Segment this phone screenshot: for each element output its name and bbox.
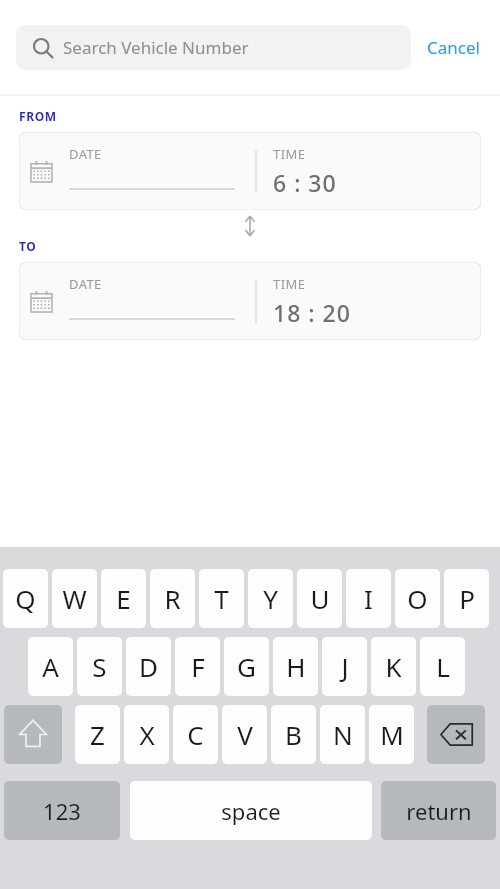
button[interactable]: Cancel bbox=[423, 32, 484, 63]
staticText: TO bbox=[19, 238, 37, 254]
staticText: H bbox=[286, 649, 306, 684]
staticText: TIME bbox=[273, 275, 306, 293]
button[interactable]: Swap from and to bbox=[237, 213, 263, 239]
button[interactable]: R bbox=[150, 569, 195, 628]
staticText: return bbox=[406, 796, 472, 826]
button[interactable]: E bbox=[101, 569, 146, 628]
button[interactable]: W bbox=[52, 569, 97, 628]
staticText: F bbox=[191, 649, 205, 684]
staticText: L bbox=[436, 649, 450, 684]
staticText: O bbox=[407, 581, 428, 616]
staticText: DATE bbox=[69, 275, 102, 293]
staticText: K bbox=[385, 649, 402, 684]
staticText: Search Vehicle Number bbox=[63, 36, 249, 59]
staticText: W bbox=[62, 581, 87, 616]
staticText: space bbox=[221, 796, 281, 826]
button[interactable]: M bbox=[369, 705, 414, 764]
button[interactable]: DATE bbox=[19, 132, 481, 210]
button[interactable]: 123 bbox=[4, 781, 120, 840]
button[interactable]: I bbox=[346, 569, 391, 628]
button[interactable]: T bbox=[199, 569, 244, 628]
button[interactable]: V bbox=[222, 705, 267, 764]
button[interactable]: Shift bbox=[4, 705, 62, 764]
staticText: Cancel bbox=[427, 36, 480, 59]
staticText: S bbox=[92, 649, 107, 684]
staticText: E bbox=[116, 581, 131, 616]
staticText: A bbox=[42, 649, 59, 684]
button[interactable]: U bbox=[297, 569, 342, 628]
staticText: 123 bbox=[43, 796, 81, 826]
staticText: T bbox=[214, 581, 229, 616]
button[interactable]: Backspace bbox=[427, 705, 485, 764]
button[interactable]: Z bbox=[75, 705, 120, 764]
button[interactable]: DATE bbox=[19, 262, 481, 340]
button[interactable]: F bbox=[175, 637, 220, 696]
staticText: D bbox=[139, 649, 158, 684]
staticText: Z bbox=[90, 717, 105, 752]
button[interactable]: C bbox=[173, 705, 218, 764]
button[interactable]: P bbox=[444, 569, 489, 628]
button[interactable]: A bbox=[28, 637, 73, 696]
staticText: N bbox=[333, 717, 353, 752]
staticText: M bbox=[380, 717, 404, 752]
button[interactable]: K bbox=[371, 637, 416, 696]
staticText: J bbox=[341, 649, 349, 684]
button[interactable]: J bbox=[322, 637, 367, 696]
staticText: G bbox=[237, 649, 256, 684]
button[interactable]: X bbox=[124, 705, 169, 764]
button[interactable]: H bbox=[273, 637, 318, 696]
staticText: X bbox=[139, 717, 155, 752]
staticText: Q bbox=[15, 581, 36, 616]
staticText: TIME bbox=[273, 145, 306, 163]
staticText: FROM bbox=[19, 108, 57, 124]
button[interactable]: S bbox=[77, 637, 122, 696]
button[interactable]: B bbox=[271, 705, 316, 764]
button[interactable]: L bbox=[420, 637, 465, 696]
staticText: B bbox=[285, 717, 302, 752]
button[interactable]: Search Vehicle Number bbox=[16, 25, 411, 70]
staticText: V bbox=[237, 717, 253, 752]
staticText: DATE bbox=[69, 145, 102, 163]
staticText: I bbox=[364, 581, 373, 616]
staticText: Y bbox=[263, 581, 278, 616]
button[interactable]: space bbox=[130, 781, 372, 840]
button[interactable]: N bbox=[320, 705, 365, 764]
button[interactable]: return bbox=[381, 781, 496, 840]
staticText: 6 : 30 bbox=[273, 167, 337, 198]
staticText: P bbox=[459, 581, 475, 616]
staticText: R bbox=[164, 581, 181, 616]
button[interactable]: O bbox=[395, 569, 440, 628]
staticText: U bbox=[310, 581, 330, 616]
button[interactable]: Q bbox=[3, 569, 48, 628]
staticText: C bbox=[187, 717, 204, 752]
button[interactable]: Y bbox=[248, 569, 293, 628]
button[interactable]: G bbox=[224, 637, 269, 696]
button[interactable]: D bbox=[126, 637, 171, 696]
staticText: 18 : 20 bbox=[273, 297, 351, 328]
